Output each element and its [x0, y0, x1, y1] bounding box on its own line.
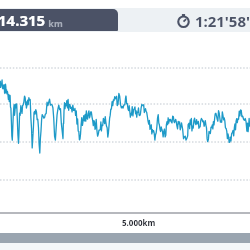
other: Duration — [176, 13, 191, 28]
staticText: 1:21'58" — [191, 11, 250, 31]
staticText: 14.315 — [0, 10, 46, 30]
staticText: km — [46, 17, 63, 29]
button[interactable]: 14.315 — [0, 9, 118, 31]
button[interactable]: Duration — [176, 9, 250, 32]
staticText: 5.000km — [122, 217, 156, 228]
